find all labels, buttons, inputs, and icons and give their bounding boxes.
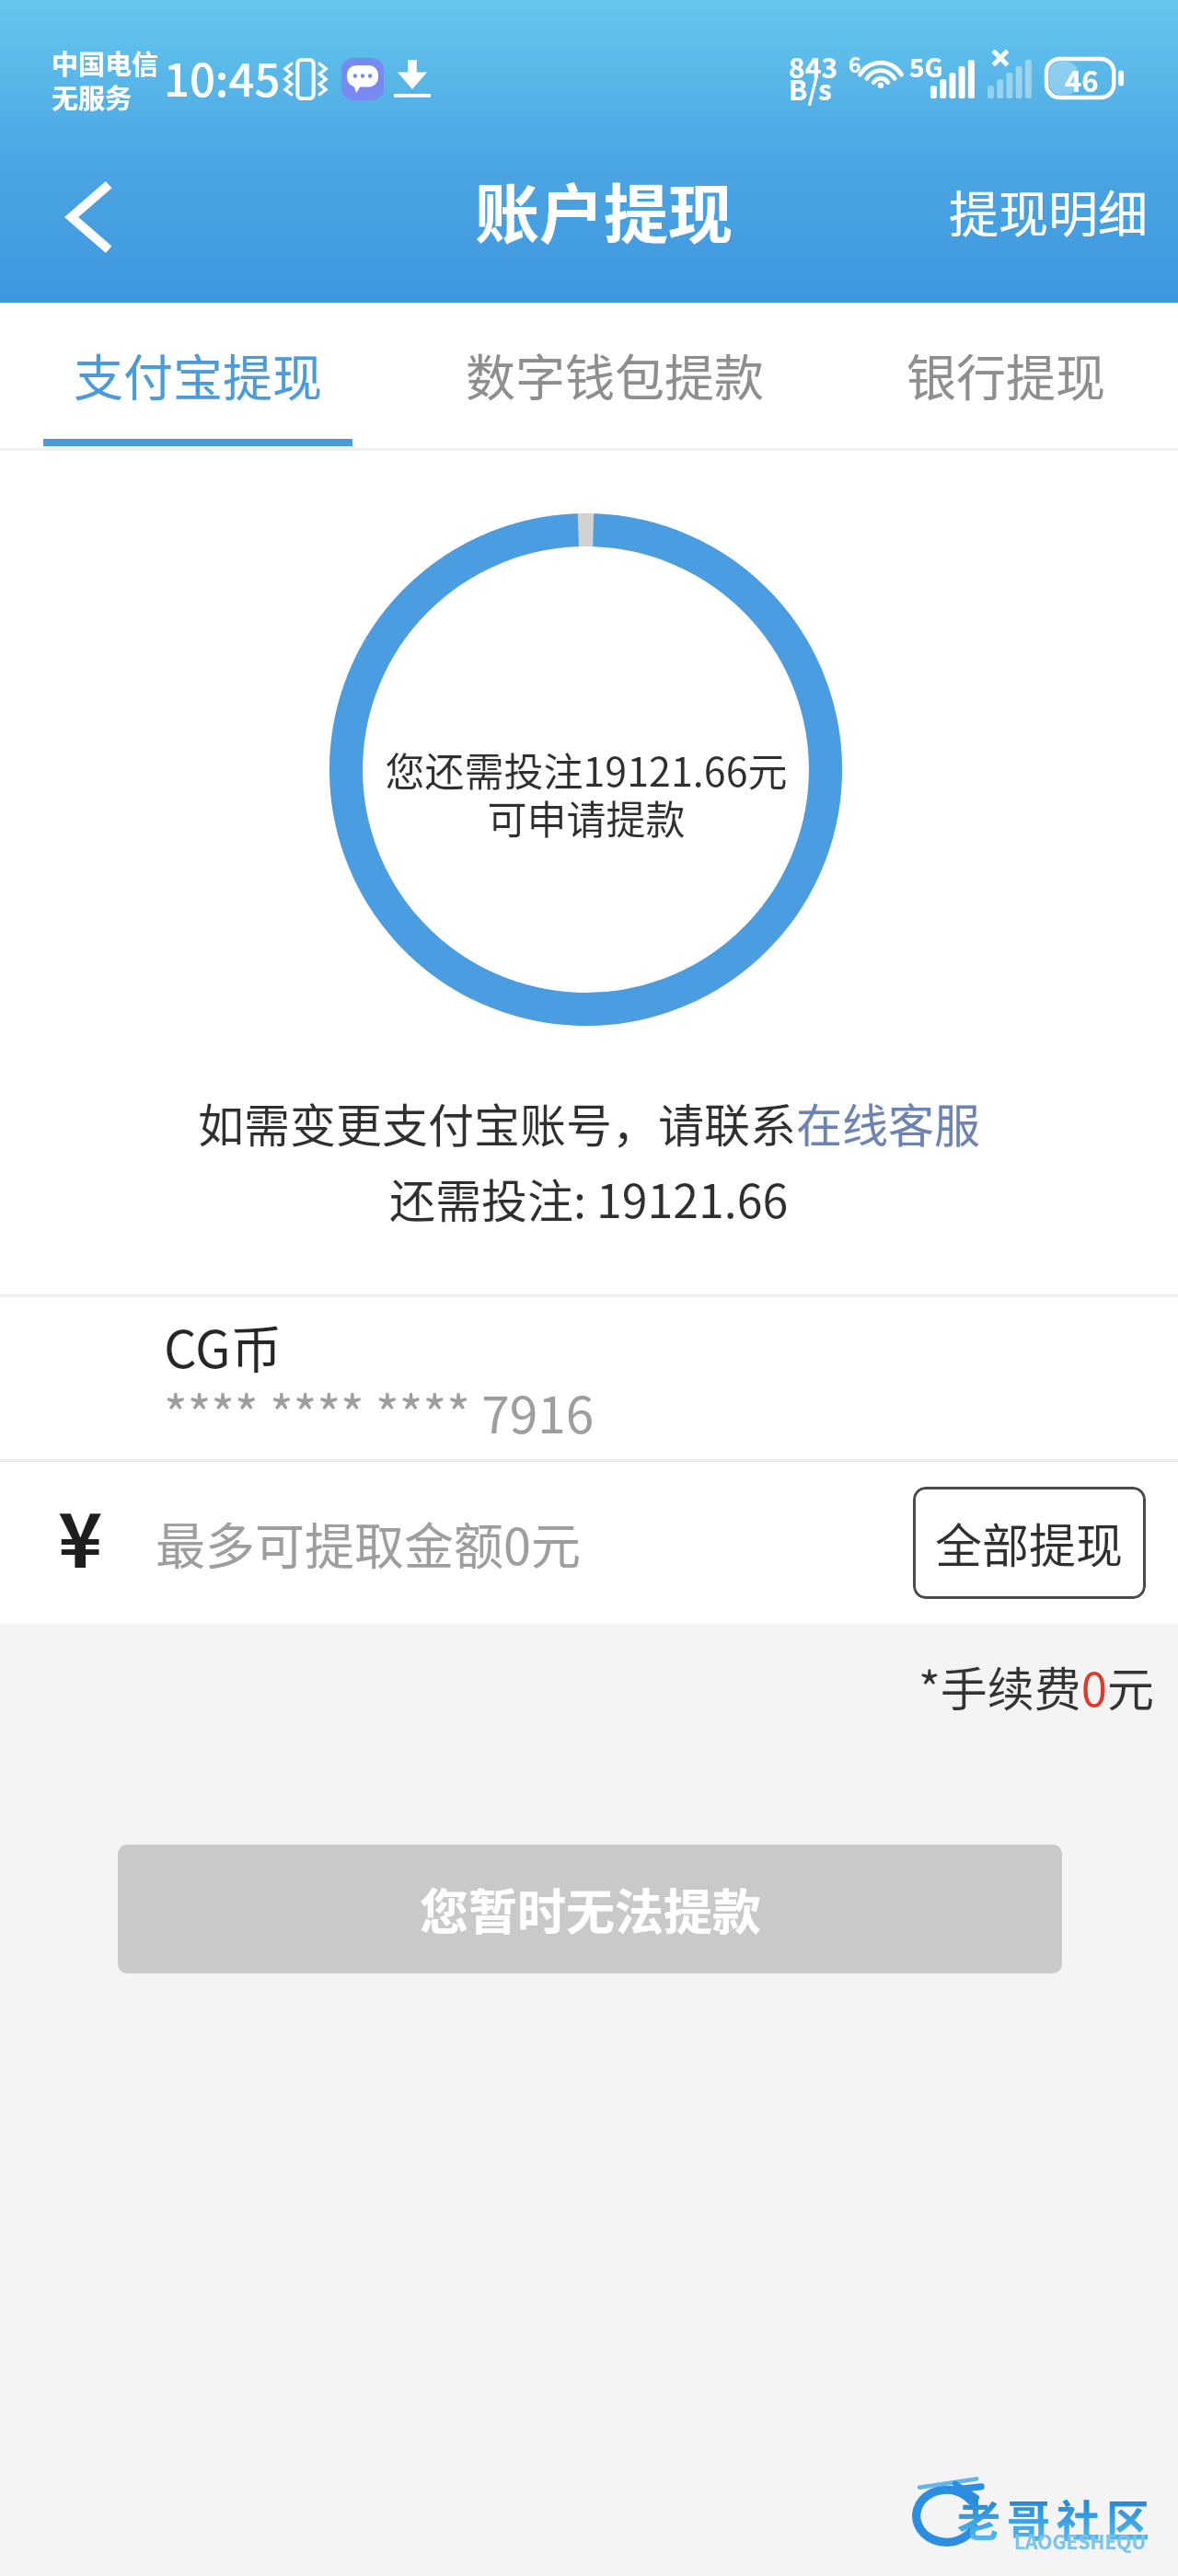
staticText: 账户提现 bbox=[475, 164, 733, 257]
staticText: 全部提现 bbox=[935, 1509, 1124, 1577]
button[interactable]: 您暂时无法提款 bbox=[118, 1845, 1062, 1973]
button[interactable]: 全部提现 bbox=[913, 1487, 1146, 1599]
staticText: 如需变更支付宝账号，请联系在线客服 bbox=[198, 1089, 980, 1156]
staticText: 46 bbox=[1065, 59, 1099, 98]
button[interactable]: 数字钱包提款 bbox=[395, 303, 834, 450]
staticText: 银行提现 bbox=[907, 339, 1105, 410]
staticText: 还需投注: 19121.66 bbox=[389, 1165, 789, 1231]
staticText: 无服务 bbox=[52, 77, 133, 116]
staticText: 提现明细 bbox=[949, 175, 1148, 247]
staticText: 843 bbox=[789, 46, 838, 86]
staticText: *手续费0元 bbox=[918, 1652, 1155, 1720]
button[interactable]: Back bbox=[44, 164, 133, 270]
staticText: 您暂时无法提款 bbox=[420, 1874, 761, 1945]
staticText: 最多可提取金额0元 bbox=[156, 1507, 581, 1579]
staticText: 6 bbox=[849, 48, 861, 78]
button[interactable]: CG币 bbox=[0, 1297, 1178, 1440]
staticText: ¥ bbox=[58, 1480, 103, 1590]
staticText: 老哥社区 bbox=[957, 2486, 1156, 2548]
button[interactable]: 提现明细 bbox=[949, 175, 1148, 247]
button[interactable]: 支付宝提现 bbox=[0, 303, 395, 450]
staticText: 您还需投注19121.66元 可申请提款 bbox=[356, 741, 816, 846]
staticText: CG币 bbox=[164, 1308, 283, 1383]
staticText: 支付宝提现 bbox=[74, 339, 322, 410]
staticText: 数字钱包提款 bbox=[466, 339, 764, 410]
staticText: 5G bbox=[909, 48, 943, 86]
button[interactable]: 银行提现 bbox=[834, 303, 1178, 450]
staticText: 10:45 bbox=[164, 44, 281, 109]
staticText: 中国电信 bbox=[52, 43, 159, 82]
staticText: B/s bbox=[789, 68, 832, 108]
staticText: **** **** **** 7916 bbox=[164, 1374, 595, 1448]
staticText: LAOGESHEQU bbox=[1014, 2527, 1147, 2555]
